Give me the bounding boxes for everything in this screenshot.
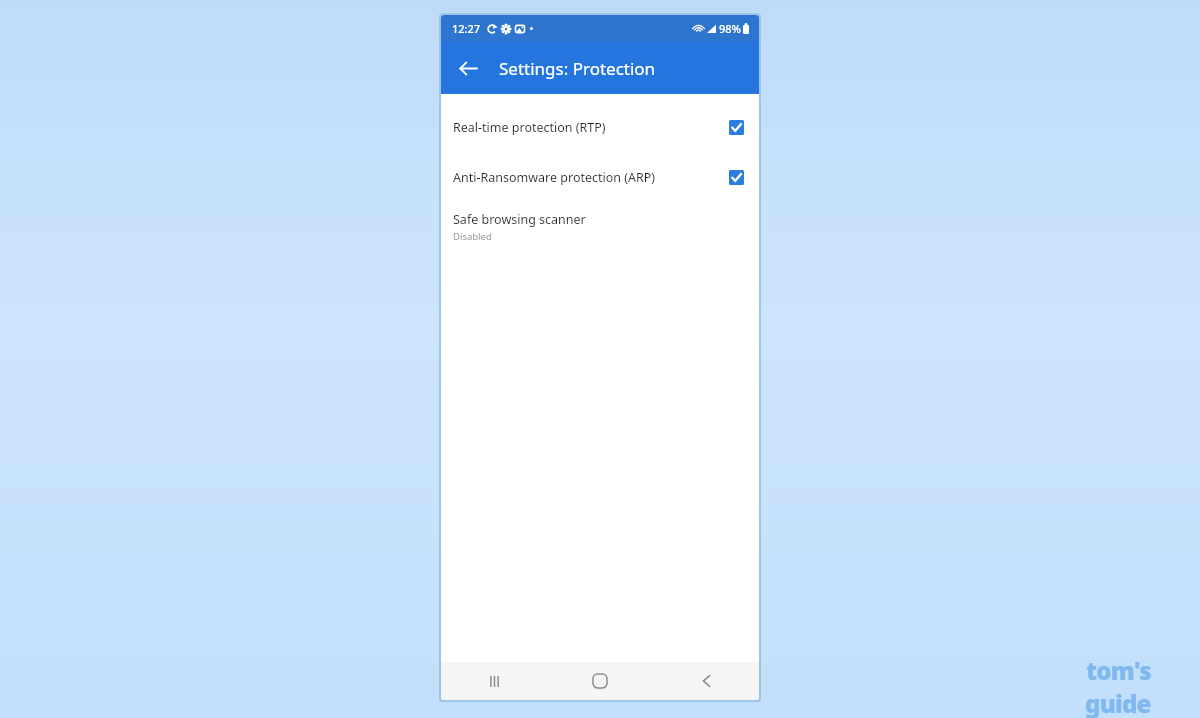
staticText: Disabled bbox=[453, 230, 492, 243]
button[interactable]: Real-time protection (RTP) bbox=[441, 102, 759, 152]
staticText: 12:27 bbox=[452, 21, 481, 36]
staticText: guide bbox=[1085, 687, 1151, 718]
button[interactable]: Anti-Ransomware protection (ARP) bbox=[441, 152, 759, 202]
staticText: Safe browsing scanner bbox=[453, 211, 586, 228]
staticText: Anti-Ransomware protection (ARP) bbox=[453, 169, 729, 186]
staticText: Settings: Protection bbox=[499, 57, 656, 80]
staticText: 98% bbox=[719, 21, 741, 36]
button[interactable]: Back bbox=[448, 48, 488, 88]
staticText: tom's bbox=[1086, 654, 1151, 687]
button[interactable]: Safe browsing scanner bbox=[441, 202, 759, 252]
button[interactable]: Back bbox=[653, 662, 759, 700]
staticText: Real-time protection (RTP) bbox=[453, 119, 729, 136]
button[interactable]: Recent apps bbox=[441, 662, 547, 700]
button[interactable]: Home bbox=[547, 662, 653, 700]
